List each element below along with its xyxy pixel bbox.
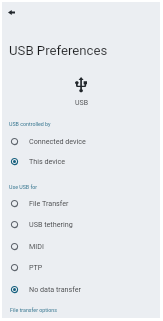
button[interactable]: Back xyxy=(2,2,22,22)
staticText: USB tethering xyxy=(29,220,73,228)
button[interactable]: File Transfer xyxy=(2,193,160,213)
button[interactable]: File transfer options xyxy=(10,307,57,313)
staticText: Use USB for xyxy=(9,184,38,190)
staticText: USB controlled by xyxy=(9,121,51,127)
button[interactable]: No data transfer xyxy=(2,279,160,299)
staticText: USB xyxy=(75,99,89,107)
button[interactable]: This device xyxy=(2,151,160,171)
staticText: Connected device xyxy=(29,137,86,145)
button[interactable]: USB tethering xyxy=(2,214,160,234)
button[interactable]: MIDI xyxy=(2,236,160,256)
staticText: This device xyxy=(29,157,66,165)
staticText: MIDI xyxy=(29,242,44,250)
staticText: File Transfer xyxy=(29,199,69,207)
staticText: USB Preferences xyxy=(9,43,108,58)
staticText: No data transfer xyxy=(29,285,81,293)
staticText: PTP xyxy=(29,263,43,271)
button[interactable]: PTP xyxy=(2,257,160,277)
button[interactable]: Connected device xyxy=(2,131,160,151)
